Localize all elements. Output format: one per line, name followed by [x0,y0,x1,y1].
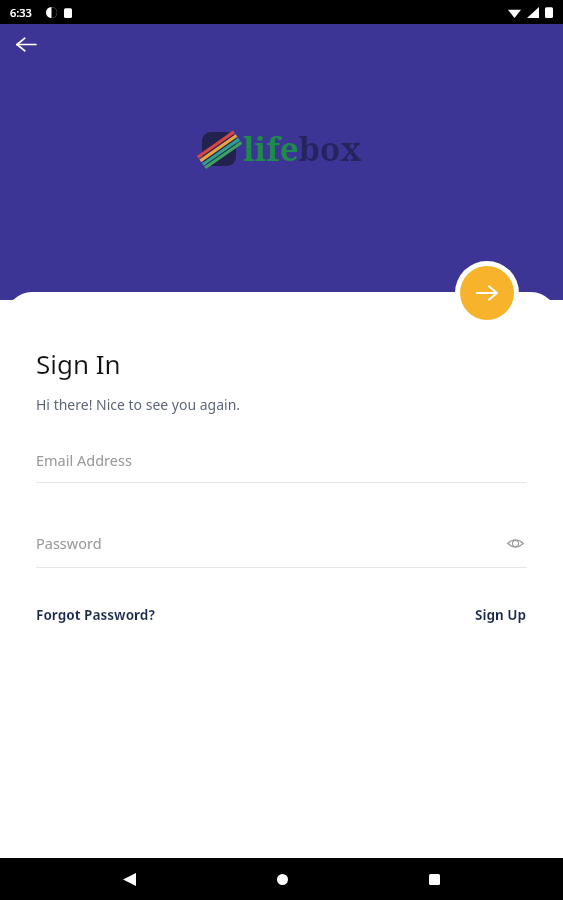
staticText: Forgot Password? [36,606,155,624]
button[interactable]: Back [105,858,153,900]
button[interactable]: Show password [503,531,527,555]
staticText: Email Address [36,450,132,470]
staticText: 6:33 [10,5,32,20]
button[interactable]: Sign Up [475,604,527,626]
staticText: Sign In [36,346,121,381]
button[interactable]: Home [258,858,306,900]
button[interactable]: Continue [460,266,514,320]
button[interactable]: Password [36,531,527,568]
staticText: Hi there! Nice to see you again. [36,395,241,414]
button[interactable]: Back [8,26,44,62]
button[interactable]: Email Address [36,450,527,483]
button[interactable]: Recents [410,858,458,900]
staticText: lifebox [243,126,362,171]
staticText: Sign Up [475,606,527,624]
staticText: Password [36,533,503,553]
button[interactable]: Forgot Password? [36,604,155,626]
